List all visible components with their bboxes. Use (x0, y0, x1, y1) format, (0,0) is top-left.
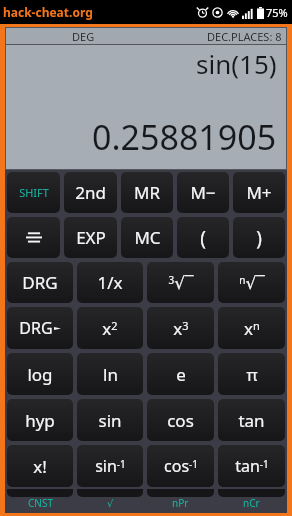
button[interactable]: SHIFT (7, 172, 60, 213)
staticText: cos-1 (164, 455, 198, 477)
staticText: √ (107, 498, 114, 510)
staticText: sin (98, 409, 122, 432)
staticText: xn (244, 317, 260, 340)
button[interactable]: log (7, 353, 73, 395)
staticText: sin-1 (95, 455, 126, 477)
button[interactable]: ln (77, 353, 143, 395)
button[interactable]: M− (177, 172, 229, 213)
staticText: 1/x (97, 271, 123, 294)
staticText: nCr (243, 496, 260, 510)
button[interactable]: tan (218, 399, 285, 441)
staticText: 2nd (75, 181, 106, 204)
staticText: tan-1 (235, 455, 269, 477)
button[interactable]: MR (121, 172, 173, 213)
button[interactable]: ( (177, 217, 229, 258)
button[interactable]: Cube root (147, 262, 214, 303)
button[interactable]: sin (77, 399, 143, 441)
staticText: 75% (266, 5, 288, 20)
staticText: hack-cheat.org (3, 4, 93, 20)
button[interactable]: 1/x (77, 262, 143, 303)
staticText: CNST (28, 496, 53, 510)
button[interactable]: x2 (77, 307, 143, 349)
staticText: sin(15) (196, 46, 277, 81)
staticText: DRG (19, 317, 53, 339)
button[interactable]: x! (7, 445, 73, 487)
button[interactable]: EXP (64, 217, 117, 258)
staticText: log (27, 363, 53, 386)
staticText: cos (167, 409, 194, 432)
button[interactable]: Nth root (218, 262, 285, 303)
staticText: 0.25881905 (92, 114, 277, 160)
staticText: ) (256, 225, 262, 251)
staticText: DEC.PLACES: 8 (207, 29, 282, 44)
staticText: MC (134, 226, 161, 249)
button[interactable]: x3 (147, 307, 214, 349)
button[interactable]: cos (147, 399, 214, 441)
button[interactable]: cos-1 (147, 445, 214, 487)
staticText: x2 (102, 317, 118, 340)
button[interactable]: Menu (7, 217, 60, 258)
button[interactable]: √ (75, 489, 145, 513)
button[interactable]: e (147, 353, 214, 395)
button[interactable]: CNST (5, 489, 75, 513)
button[interactable]: DRG convert (7, 307, 73, 349)
button[interactable]: sin-1 (77, 445, 143, 487)
staticText: e (176, 363, 186, 386)
staticText: π (246, 363, 258, 386)
staticText: x! (33, 455, 47, 478)
staticText: MR (134, 181, 160, 204)
button[interactable]: π (218, 353, 285, 395)
staticText: n√¯ (239, 271, 265, 294)
staticText: 3√¯ (168, 271, 194, 294)
staticText: DEG (72, 29, 95, 44)
staticText: ln (103, 363, 118, 386)
staticText: tan (238, 409, 265, 432)
staticText: EXP (76, 226, 106, 249)
button[interactable]: DRG (7, 262, 73, 303)
button[interactable]: nPr (145, 489, 216, 513)
button[interactable]: MC (121, 217, 173, 258)
staticText: M− (190, 181, 216, 204)
staticText: DRG (22, 271, 58, 294)
button[interactable]: 2nd (64, 172, 117, 213)
button[interactable]: M+ (233, 172, 285, 213)
staticText: nPr (172, 496, 189, 510)
button[interactable]: tan-1 (218, 445, 285, 487)
staticText: M+ (246, 181, 272, 204)
button[interactable]: nCr (216, 489, 287, 513)
staticText: ( (200, 225, 206, 251)
button[interactable]: ) (233, 217, 285, 258)
staticText: SHIFT (19, 185, 49, 200)
staticText: hyp (25, 409, 55, 432)
staticText: x3 (173, 317, 189, 340)
button[interactable]: xn (218, 307, 285, 349)
button[interactable]: hyp (7, 399, 73, 441)
